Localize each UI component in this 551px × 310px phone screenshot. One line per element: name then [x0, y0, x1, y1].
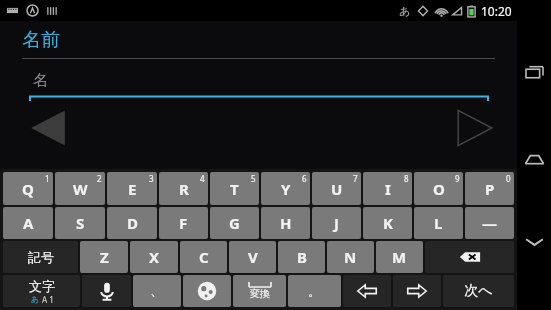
button[interactable]: D — [107, 207, 157, 239]
staticText: N — [344, 247, 357, 267]
button[interactable]: Recent apps — [519, 58, 549, 88]
button[interactable]: O — [414, 172, 463, 205]
button[interactable]: U — [312, 172, 361, 205]
button[interactable]: Hide keyboard — [519, 226, 549, 256]
staticText: 名前 — [22, 28, 60, 52]
button[interactable]: Home — [519, 144, 549, 174]
button[interactable]: 。 — [288, 275, 341, 307]
staticText: — — [482, 213, 498, 233]
staticText: 4 — [200, 173, 205, 184]
button[interactable]: Next — [455, 108, 495, 148]
button[interactable]: N — [327, 241, 374, 273]
button[interactable]: Z — [80, 241, 128, 273]
staticText: C — [199, 247, 209, 267]
button[interactable]: L — [414, 207, 463, 239]
button[interactable]: K — [363, 207, 412, 239]
button[interactable]: I — [363, 172, 412, 205]
staticText: 2 — [97, 173, 102, 184]
button[interactable]: Q — [3, 172, 53, 205]
staticText: G — [229, 213, 240, 233]
staticText: B — [297, 247, 307, 267]
staticText: 3 — [149, 173, 154, 184]
staticText: 文字 — [29, 278, 55, 294]
button[interactable]: 記号 — [3, 241, 78, 273]
button[interactable]: G — [210, 207, 259, 239]
button[interactable]: J — [312, 207, 361, 239]
button[interactable]: — — [465, 207, 514, 239]
staticText: あ — [31, 294, 40, 304]
button[interactable]: Voice input — [82, 275, 131, 307]
staticText: 10:20 — [481, 3, 512, 19]
button[interactable]: Cursor right — [393, 275, 441, 307]
staticText: A 1 — [40, 294, 54, 305]
button[interactable]: S — [55, 207, 105, 239]
staticText: M — [392, 247, 407, 267]
button[interactable]: M — [376, 241, 423, 273]
staticText: 、 — [150, 282, 164, 300]
button[interactable]: Previous — [28, 108, 68, 148]
staticText: U — [331, 179, 343, 199]
button[interactable]: V — [229, 241, 276, 273]
staticText: I — [385, 179, 391, 199]
button[interactable]: P — [465, 172, 514, 205]
staticText: 1 — [45, 173, 50, 184]
staticText: 。 — [308, 283, 321, 299]
button[interactable]: E — [107, 172, 157, 205]
staticText: 5 — [251, 173, 256, 184]
staticText: L — [434, 213, 443, 233]
staticText: 9 — [455, 173, 460, 184]
staticText: Z — [100, 247, 109, 267]
button[interactable]: W — [55, 172, 105, 205]
button[interactable]: F — [159, 207, 208, 239]
staticText: 記号 — [28, 249, 54, 265]
button[interactable]: R — [159, 172, 208, 205]
button[interactable]: H — [261, 207, 310, 239]
button[interactable]: Backspace — [425, 241, 514, 273]
button[interactable]: 変換 — [233, 275, 286, 307]
staticText: 変換 — [250, 287, 270, 300]
staticText: A — [23, 213, 34, 233]
button[interactable]: X — [130, 241, 178, 273]
staticText: H — [280, 213, 292, 233]
staticText: K — [383, 213, 393, 233]
staticText: 0 — [506, 173, 511, 184]
button[interactable]: 、 — [133, 275, 181, 307]
staticText: D — [127, 213, 138, 233]
button[interactable]: B — [278, 241, 325, 273]
button[interactable]: Y — [261, 172, 310, 205]
button[interactable]: 文字 — [3, 275, 80, 307]
staticText: T — [230, 179, 239, 199]
button[interactable]: Change language — [183, 275, 231, 307]
staticText: Y — [281, 179, 291, 199]
staticText: あ — [399, 4, 411, 18]
button[interactable]: Cursor left — [343, 275, 391, 307]
staticText: J — [334, 213, 339, 233]
staticText: 7 — [353, 173, 358, 184]
staticText: P — [485, 179, 495, 199]
button[interactable]: C — [180, 241, 227, 273]
button[interactable]: T — [210, 172, 259, 205]
button[interactable]: 次へ — [443, 275, 514, 307]
staticText: 名 — [33, 71, 48, 90]
staticText: 6 — [302, 173, 307, 184]
staticText: W — [73, 179, 88, 199]
staticText: X — [149, 247, 160, 267]
button[interactable]: A — [3, 207, 53, 239]
staticText: F — [179, 213, 188, 233]
staticText: 8 — [404, 173, 409, 184]
staticText: E — [128, 179, 137, 199]
staticText: Q — [22, 179, 34, 199]
staticText: S — [76, 213, 85, 233]
staticText: O — [433, 179, 445, 199]
staticText: R — [179, 179, 189, 199]
staticText: 次へ — [464, 282, 493, 300]
staticText: V — [248, 247, 258, 267]
